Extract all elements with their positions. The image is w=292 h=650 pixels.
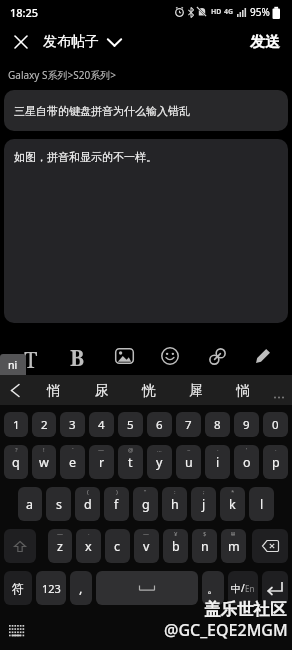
staticText: r [99,454,105,471]
button[interactable] [266,375,292,405]
button[interactable]: 惝 [219,375,266,405]
button[interactable]: 6 [147,412,172,437]
button[interactable]: g [133,487,158,521]
staticText: 7 [185,417,192,433]
button[interactable]: 犀 [172,375,219,405]
staticText: 9 [243,417,250,433]
staticText: 6 [156,417,163,433]
button[interactable] [0,375,30,405]
staticText: $ [203,530,207,538]
button[interactable]: r [89,445,114,479]
button[interactable]: c [105,529,130,563]
button[interactable]: e [60,445,85,479]
button[interactable]: 5 [118,412,143,437]
staticText: 0 [272,417,279,433]
button[interactable]: u [176,445,201,479]
button[interactable]: q [4,445,28,479]
button[interactable]: a [18,487,42,521]
button[interactable]: p [263,445,288,479]
button[interactable]: 悄 [30,375,78,405]
staticText: 2 [41,417,48,433]
button[interactable]: i [205,445,230,479]
button[interactable]: 发送 [250,33,280,52]
button[interactable]: T [17,344,45,368]
staticText: · [217,446,219,454]
staticText: @GC_EQE2MGM [164,619,288,641]
button[interactable]: 8 [205,412,230,437]
button[interactable]: n [192,529,217,563]
button[interactable]: w [32,445,56,479]
button[interactable]: z [48,529,72,563]
staticText: — [143,530,150,538]
staticText: 恍 [142,382,156,399]
staticText: l [260,496,264,513]
staticText: 中/ [231,581,245,595]
button[interactable] [4,529,36,563]
button[interactable] [12,33,30,51]
staticText: — [57,530,64,538]
button[interactable]: y [147,445,172,479]
staticText: · [88,530,90,538]
button[interactable]: 如图，拼音和显示的不一样。 [4,139,288,323]
button[interactable]: 9 [234,412,259,437]
staticText: n [201,538,209,555]
button[interactable]: s [46,487,71,521]
staticText: 4G [224,7,234,17]
staticText: ¥ [174,530,178,538]
button[interactable]: 中/ [228,571,258,605]
button[interactable] [203,344,231,368]
staticText: v [143,538,150,555]
button[interactable] [252,529,288,563]
button[interactable]: B [63,344,91,368]
button[interactable]: m [221,529,246,563]
button[interactable]: 1 [4,412,28,437]
staticText: i [216,454,220,471]
staticText: c [114,538,121,555]
staticText: a [26,496,34,513]
button[interactable]: 尿 [78,375,125,405]
button[interactable] [262,571,288,605]
staticText: ! [43,446,45,454]
button[interactable]: j [191,487,216,521]
button[interactable]: 3 [60,412,85,437]
button[interactable]: 7 [176,412,201,437]
button[interactable] [96,571,198,605]
button[interactable]: t [118,445,143,479]
staticText: z [57,538,63,555]
button[interactable]: o [234,445,259,479]
staticText: 尿 [95,382,109,399]
button[interactable]: d [75,487,100,521]
staticText: 如图，拼音和显示的不一样。 [14,150,157,164]
button[interactable] [110,344,138,368]
button[interactable]: l [249,487,274,521]
button[interactable]: 4 [89,412,114,437]
button[interactable]: 123 [36,571,66,605]
staticText: 悄 [47,382,61,399]
button[interactable] [156,344,184,368]
staticText: 发布帖子 [43,33,99,51]
staticText: h [171,496,179,513]
button[interactable] [249,344,277,368]
staticText: 盖乐世社区 [204,599,287,620]
button[interactable]: 。 [202,571,224,605]
staticText: 1 [13,417,20,433]
button[interactable]: b [163,529,188,563]
staticText: — [98,446,105,454]
staticText: 18:25 [10,5,39,20]
button[interactable]: k [220,487,245,521]
button[interactable]: f [104,487,129,521]
button[interactable]: 2 [32,412,56,437]
button[interactable]: , [70,571,92,605]
staticText: 犀 [189,382,203,399]
button[interactable]: v [134,529,159,563]
button[interactable]: 三星自带的键盘拼音为什么输入错乱 [4,90,288,131]
button[interactable]: 恍 [125,375,172,405]
button[interactable]: 发布帖子 [43,33,122,51]
staticText: ` [72,446,74,454]
staticText: g [142,496,150,513]
staticText: 。 [207,581,219,596]
button[interactable]: 0 [263,412,288,437]
button[interactable]: h [162,487,187,521]
button[interactable]: 符 [4,571,32,605]
button[interactable]: x [76,529,101,563]
